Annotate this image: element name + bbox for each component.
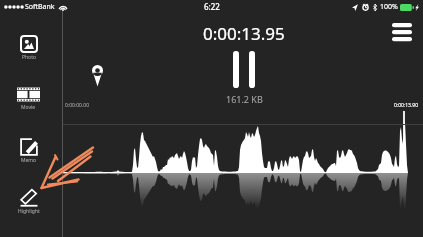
staticText: 0:00:00.00 — [65, 102, 90, 109]
button[interactable]: Movie — [5, 86, 52, 130]
staticText: 0:00:13.90 — [394, 102, 419, 109]
button[interactable]: Photo — [5, 35, 52, 79]
staticText: Movie — [21, 104, 36, 111]
button[interactable]: Memo — [5, 138, 52, 182]
staticText: SoftBank — [25, 2, 55, 12]
staticText: Highlight — [18, 208, 40, 215]
staticText: 6:22 — [204, 1, 220, 12]
staticText: 0:00:13.95 — [203, 22, 285, 45]
other: Location marker — [92, 65, 103, 86]
button[interactable]: Highlight — [5, 189, 52, 233]
button[interactable]: Menu — [392, 23, 412, 41]
staticText: 161.2 KB — [226, 93, 263, 105]
staticText: 100% — [380, 2, 398, 12]
button[interactable]: Pause recording — [233, 51, 255, 88]
staticText: Photo — [22, 54, 36, 61]
staticText: Memo — [21, 157, 37, 164]
